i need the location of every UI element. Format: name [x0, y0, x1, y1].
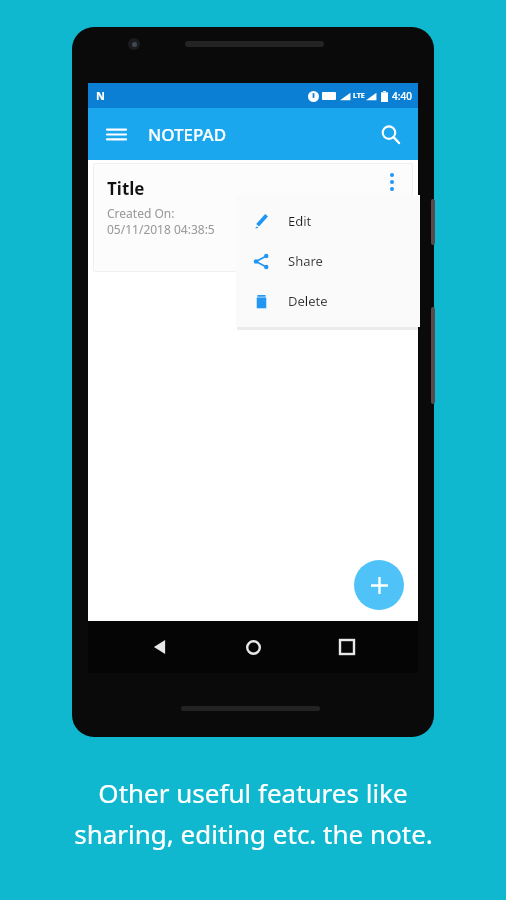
staticText: 4:40 [392, 89, 412, 103]
staticText: 05/11/2018 04:38:5 [107, 221, 215, 237]
button[interactable]: Title [93, 163, 413, 272]
button[interactable]: Back [138, 625, 182, 669]
button[interactable]: Home [231, 625, 275, 669]
staticText: Title [107, 177, 145, 200]
button[interactable]: More options [377, 167, 407, 197]
button[interactable]: Add note [354, 560, 404, 610]
button[interactable]: Open navigation menu [100, 118, 132, 150]
button[interactable]: Recent apps [325, 625, 369, 669]
staticText: Created On: [107, 205, 175, 221]
staticText: Share [288, 252, 323, 270]
staticText: Other useful features like [98, 775, 408, 810]
staticText: N [96, 88, 105, 103]
staticText: NOTEPAD [148, 123, 227, 146]
button[interactable]: Share [236, 241, 420, 281]
staticText: Delete [288, 292, 328, 310]
button[interactable]: Edit [236, 201, 420, 241]
staticText: sharing, editing etc. the note. [74, 816, 433, 851]
button[interactable]: Search [374, 118, 406, 150]
button[interactable]: Delete [236, 281, 420, 321]
staticText: LTE [353, 91, 365, 101]
staticText: Edit [288, 212, 312, 230]
